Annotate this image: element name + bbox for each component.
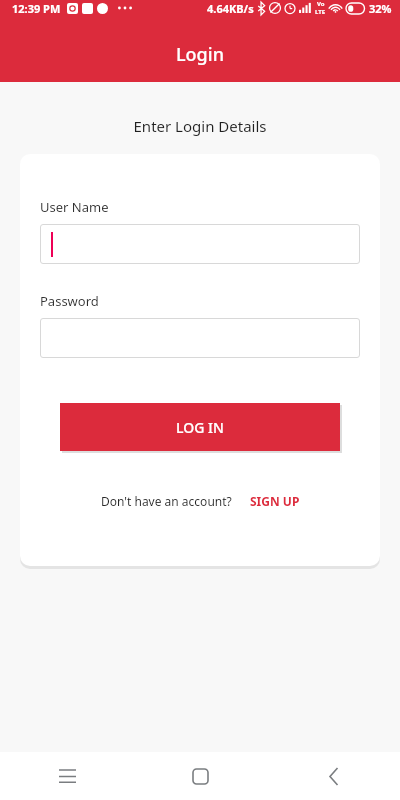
staticText: Enter Login Details xyxy=(0,116,400,136)
button[interactable]: Recent apps xyxy=(0,752,134,800)
staticText: LOG IN xyxy=(176,418,224,437)
button[interactable]: SIGN UP xyxy=(250,493,300,509)
button[interactable] xyxy=(40,224,360,264)
button[interactable] xyxy=(40,318,360,358)
button[interactable]: Home xyxy=(134,752,267,800)
staticText: 12:39 PM xyxy=(12,1,61,16)
staticText: 4.64KB/s xyxy=(207,1,254,16)
staticText: User Name xyxy=(40,198,109,216)
staticText: 32% xyxy=(369,1,392,16)
staticText: LTE xyxy=(315,8,326,16)
button[interactable]: Back xyxy=(267,752,400,800)
staticText: Login xyxy=(176,42,224,67)
staticText: SIGN UP xyxy=(250,493,300,509)
staticText: Password xyxy=(40,292,99,310)
staticText: Vo xyxy=(317,0,325,8)
button[interactable]: LOG IN xyxy=(60,403,340,451)
staticText: Don't have an account? xyxy=(101,493,232,509)
